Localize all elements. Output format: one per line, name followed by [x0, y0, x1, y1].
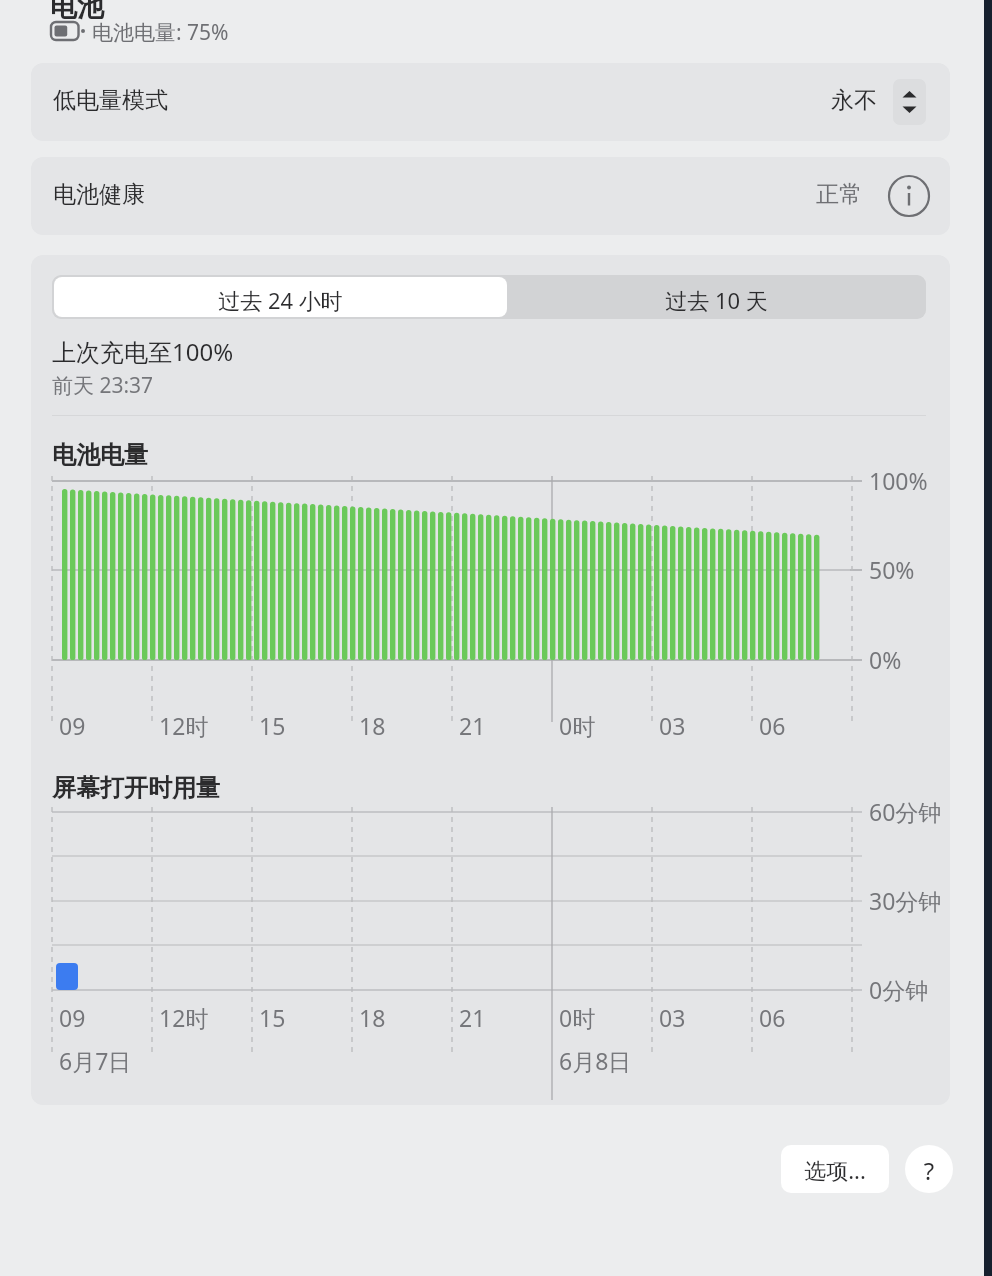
button[interactable]: Change low power mode	[893, 79, 926, 125]
staticText: 过去 10 天	[509, 285, 924, 319]
staticText: 电池电量: 75%	[92, 18, 229, 47]
staticText: 12时	[159, 1002, 209, 1033]
button[interactable]: 电池健康	[31, 157, 950, 235]
staticText: 18	[359, 1002, 386, 1033]
staticText: 03	[659, 710, 686, 741]
staticText: 0%	[869, 644, 902, 675]
staticText: 21	[459, 710, 486, 741]
staticText: 21	[459, 1002, 486, 1033]
button[interactable]: 过去 10 天	[509, 277, 924, 317]
staticText: 50%	[869, 554, 915, 585]
staticText: 过去 24 小时	[54, 285, 507, 317]
button[interactable]: Help	[905, 1145, 953, 1193]
staticText: 0时	[559, 1002, 596, 1033]
staticText: 03	[659, 1002, 686, 1033]
staticText: 6月8日	[559, 1045, 632, 1076]
staticText: 屏幕打开时用量	[52, 773, 220, 803]
staticText: 06	[759, 1002, 786, 1033]
button[interactable]: 选项...	[781, 1145, 889, 1193]
staticText: 选项...	[781, 1155, 889, 1193]
staticText: 上次充电至100%	[52, 335, 234, 368]
staticText: 30分钟	[869, 885, 942, 916]
staticText: 前天 23:37	[52, 371, 154, 400]
staticText: 电池电量	[52, 440, 148, 470]
staticText: 09	[59, 1002, 86, 1033]
button[interactable]: 过去 24 小时	[54, 277, 507, 317]
staticText: 低电量模式	[53, 86, 168, 115]
staticText: 电池	[50, 0, 104, 24]
staticText: ?	[905, 1154, 953, 1193]
staticText: 6月7日	[59, 1045, 132, 1076]
staticText: 15	[259, 1002, 286, 1033]
staticText: 09	[59, 710, 86, 741]
staticText: 电池健康	[53, 180, 145, 209]
button[interactable]: Battery health info	[886, 173, 932, 219]
staticText: 18	[359, 710, 386, 741]
staticText: 100%	[869, 465, 928, 496]
staticText: 永不	[831, 86, 877, 115]
staticText: 0时	[559, 710, 596, 741]
staticText: 60分钟	[869, 796, 942, 827]
staticText: 06	[759, 710, 786, 741]
staticText: 12时	[159, 710, 209, 741]
staticText: 正常	[816, 180, 862, 209]
staticText: 0分钟	[869, 974, 929, 1005]
button[interactable]: 低电量模式	[31, 63, 950, 141]
staticText: 15	[259, 710, 286, 741]
